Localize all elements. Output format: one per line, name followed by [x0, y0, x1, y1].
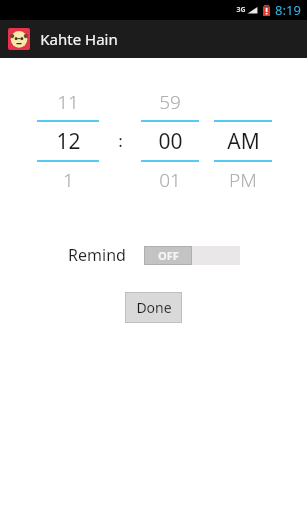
button[interactable]: AM PM value AM: [210, 122, 276, 160]
staticText: 8:19: [275, 1, 301, 19]
staticText: 11: [57, 89, 79, 115]
staticText: OFF: [158, 248, 179, 263]
staticText: AM: [227, 127, 260, 156]
staticText: 1: [63, 167, 74, 193]
button[interactable]: Hour decrement: [32, 162, 104, 198]
staticText: 59: [159, 89, 181, 115]
staticText: 3G: [236, 5, 246, 15]
staticText: 01: [159, 167, 181, 193]
staticText: :: [118, 129, 123, 152]
staticText: Done: [136, 298, 172, 317]
button[interactable]: Minute increment: [136, 84, 204, 120]
button[interactable]: Minute decrement: [136, 162, 204, 198]
button[interactable]: Hour value 12: [32, 122, 104, 160]
button[interactable]: Remind toggle, off: [144, 246, 240, 265]
button[interactable]: AM PM decrement: [210, 162, 276, 198]
staticText: 00: [158, 127, 183, 156]
button[interactable]: Minute value 00: [136, 122, 204, 160]
staticText: 12: [56, 127, 81, 156]
other: App icon: [8, 28, 30, 50]
button[interactable]: Hour increment: [32, 84, 104, 120]
staticText: Remind: [68, 244, 126, 266]
staticText: PM: [229, 167, 257, 193]
button[interactable]: Done: [125, 292, 182, 323]
staticText: Kahte Hain: [40, 29, 118, 49]
